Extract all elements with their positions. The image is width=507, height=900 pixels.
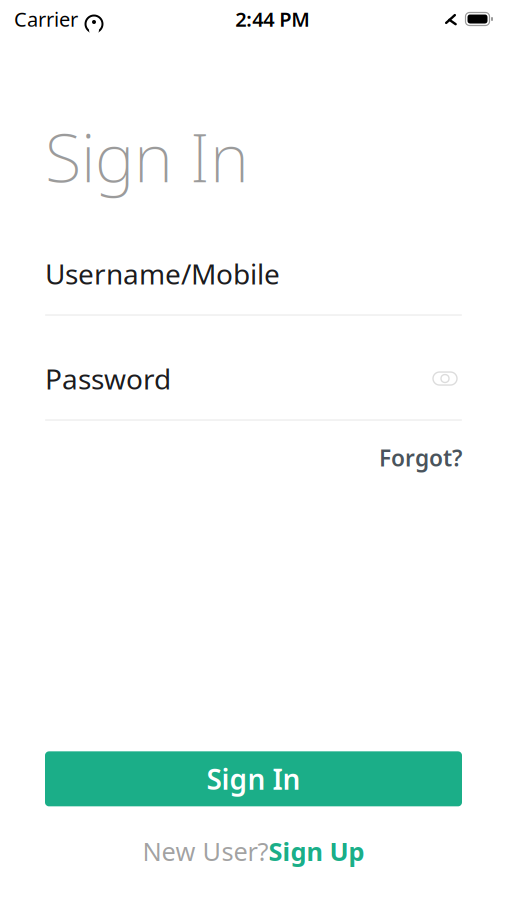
staticText: 2:44 PM [235, 6, 310, 32]
button[interactable]: Forgot? [379, 442, 462, 473]
staticText: Sign In [45, 112, 249, 200]
staticText: Carrier [14, 6, 78, 32]
button[interactable]: New User? [130, 828, 376, 874]
staticText: Username/Mobile [45, 255, 280, 292]
button[interactable]: Sign In [45, 751, 462, 806]
staticText: Sign In [206, 760, 300, 797]
staticText: Sign Up [268, 834, 364, 868]
staticText: New User? [142, 834, 268, 868]
staticText: Forgot? [379, 442, 462, 473]
button[interactable]: Show password [428, 364, 462, 392]
staticText: Password [45, 360, 171, 397]
